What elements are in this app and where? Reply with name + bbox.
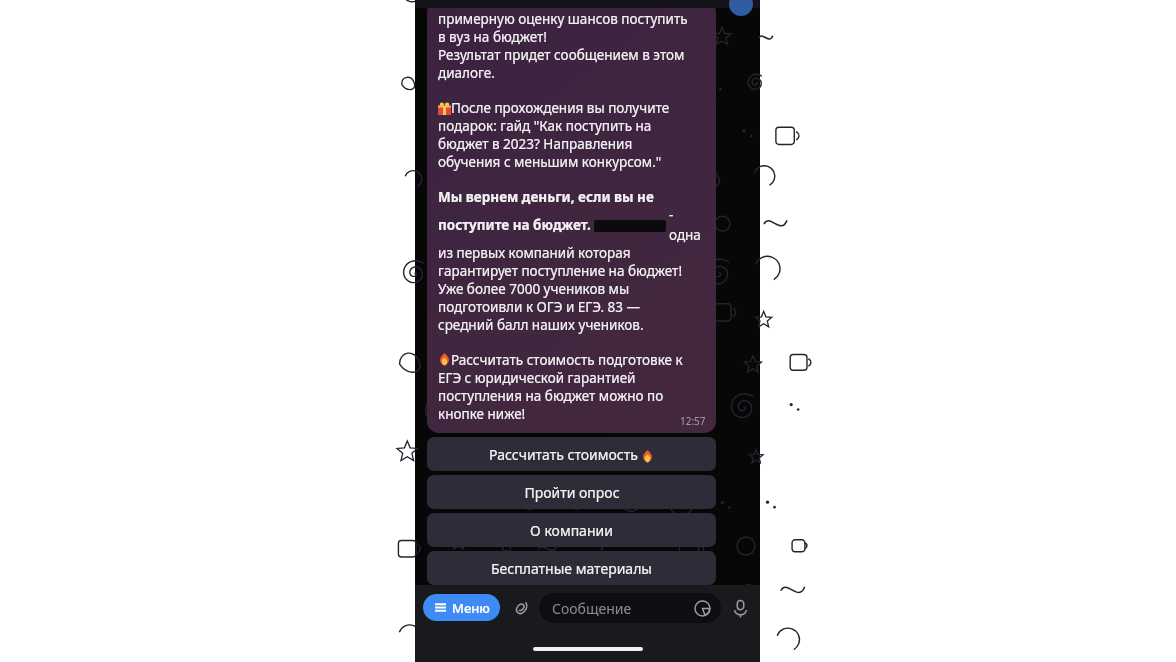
button[interactable]: Рассчитать стоимость: [427, 437, 716, 471]
button[interactable]: Бесплатные материалы: [427, 551, 716, 585]
staticText: средний балл наших учеников.: [438, 316, 644, 334]
staticText: диалоге.: [438, 64, 495, 82]
staticText: - одна: [669, 206, 706, 244]
button[interactable]: примерную оценку шансов поступить: [427, 8, 716, 433]
staticText: Сообщение: [552, 599, 632, 618]
button[interactable]: Attach: [509, 596, 533, 620]
button[interactable]: Сообщение: [539, 593, 721, 623]
button[interactable]: О компании: [427, 513, 716, 547]
staticText: Рассчитать стоимость: [489, 445, 638, 464]
staticText: О компании: [530, 521, 613, 540]
staticText: Меню: [452, 599, 490, 617]
staticText: Уже более 7000 учеников мы: [438, 280, 630, 298]
staticText: гарантирует поступление на бюджет!: [438, 262, 683, 280]
staticText: подготоивли к ОГЭ и ЕГЭ. 83 —: [438, 298, 641, 316]
staticText: После прохождения вы получите: [451, 99, 670, 117]
staticText: ЕГЭ с юридической гарантией: [438, 369, 636, 387]
staticText: 12:57: [680, 414, 706, 428]
staticText: в вуз на бюджет!: [438, 28, 547, 46]
staticText: поступления на бюджет можно по: [438, 387, 664, 405]
staticText: Рассчитать стоимость подготовке к: [451, 351, 683, 369]
staticText: Бесплатные материалы: [491, 559, 652, 578]
staticText: кнопке ниже!: [438, 405, 526, 423]
staticText: подарок: гайд "Как поступить на: [438, 117, 652, 135]
staticText: поступите на бюджет.: [438, 216, 591, 234]
staticText: из первых компаний которая: [438, 244, 631, 262]
button[interactable]: Меню: [423, 594, 500, 621]
button[interactable]: Пройти опрос: [427, 475, 716, 509]
button[interactable]: Stickers: [692, 598, 712, 618]
staticText: примерную оценку шансов поступить: [438, 10, 688, 28]
button[interactable]: Voice message: [728, 596, 752, 620]
staticText: Пройти опрос: [524, 483, 620, 502]
staticText: Результат придет сообщением в этом: [438, 46, 685, 64]
staticText: обучения с меньшим конкурсом.": [438, 153, 662, 171]
staticText: бюджет в 2023? Направления: [438, 135, 633, 153]
staticText: Мы вернем деньги, если вы не: [438, 188, 654, 206]
